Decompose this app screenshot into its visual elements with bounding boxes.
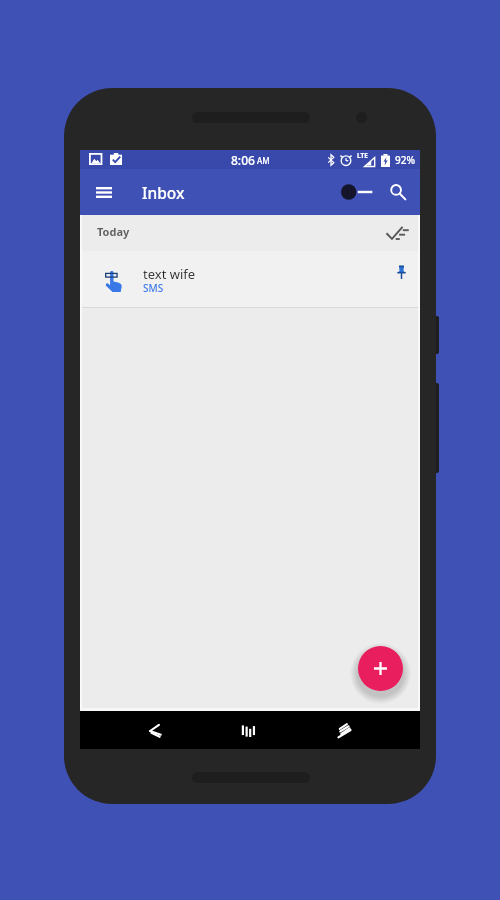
button[interactable]: Open navigation drawer	[84, 172, 124, 212]
button[interactable]: Home	[229, 711, 267, 749]
button[interactable]: Filter	[329, 170, 373, 214]
staticText: 92%	[395, 153, 415, 167]
staticText: LTE	[357, 151, 368, 160]
button[interactable]: Search	[376, 170, 420, 214]
button[interactable]: Mark all read	[377, 215, 417, 251]
button[interactable]: Compose new message	[358, 646, 403, 691]
button[interactable]: Recent apps	[325, 711, 363, 749]
button[interactable]: text wife	[82, 251, 418, 307]
button[interactable]: Pin	[384, 251, 417, 307]
staticText: Today	[97, 224, 130, 239]
staticText: 8:06	[231, 152, 255, 168]
staticText: SMS	[143, 281, 164, 295]
button[interactable]: Back	[134, 711, 172, 749]
staticText: text wife	[143, 265, 196, 283]
staticText: Inbox	[142, 182, 185, 203]
button[interactable]: Today	[82, 215, 418, 251]
staticText: AM	[257, 155, 270, 166]
